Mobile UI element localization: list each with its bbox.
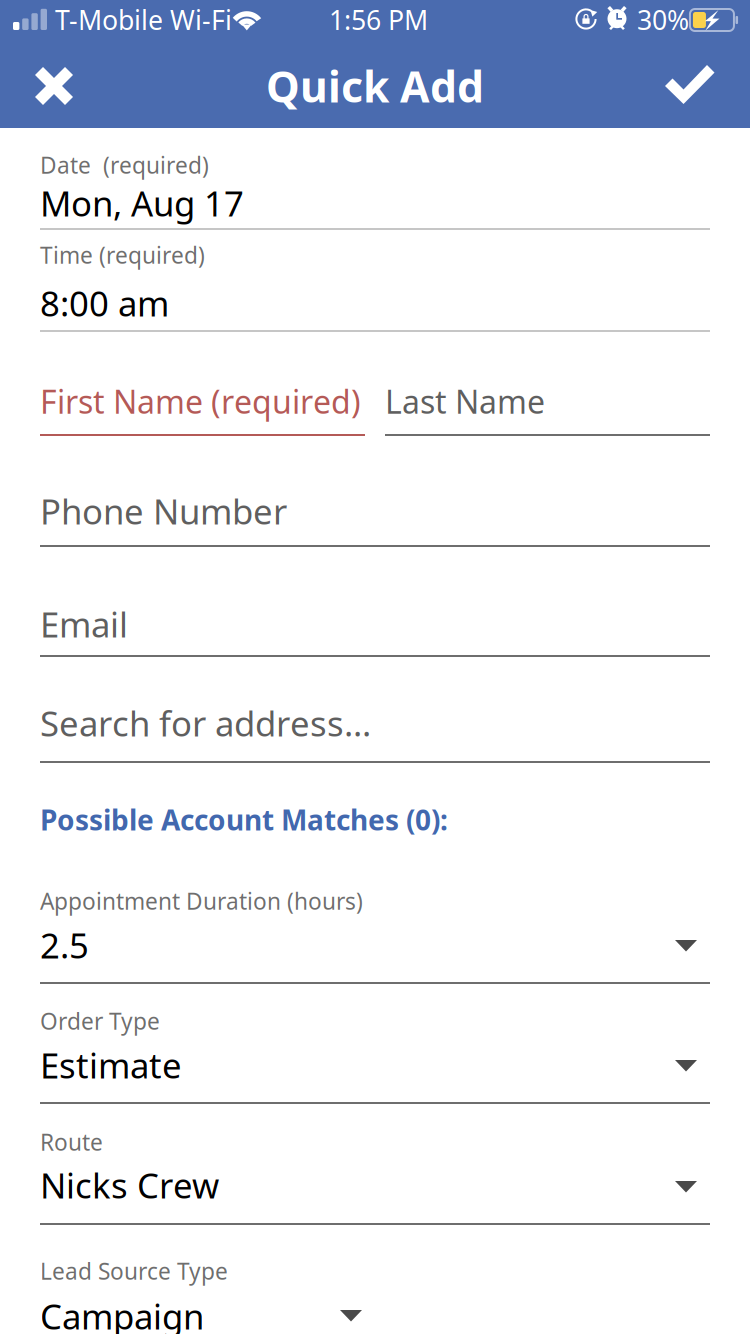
staticText: 8:00 am bbox=[40, 280, 169, 326]
button[interactable]: Close bbox=[6, 50, 102, 122]
staticText: Last Name bbox=[385, 380, 545, 422]
staticText: Date (required) bbox=[40, 150, 209, 180]
button[interactable]: Route bbox=[40, 1127, 710, 1223]
staticText: Mon, Aug 17 bbox=[40, 180, 244, 226]
staticText: 30% bbox=[637, 2, 689, 37]
button[interactable]: Time (required) bbox=[40, 242, 710, 330]
button[interactable]: Date (required) bbox=[40, 150, 710, 238]
button[interactable]: Save bbox=[640, 50, 736, 122]
staticText: 1:56 PM bbox=[329, 2, 428, 37]
button[interactable]: Search for address... bbox=[40, 701, 710, 771]
staticText: First Name (required) bbox=[40, 380, 361, 422]
staticText: Nicks Crew bbox=[40, 1162, 219, 1208]
button[interactable]: Appointment Duration (hours) bbox=[40, 886, 710, 982]
staticText: Search for address... bbox=[40, 700, 371, 746]
staticText: Time (required) bbox=[40, 240, 205, 270]
button[interactable]: Email bbox=[40, 602, 710, 672]
button[interactable]: Phone Number bbox=[40, 489, 710, 559]
staticText: Order Type bbox=[40, 1006, 160, 1036]
staticText: Lead Source Type bbox=[40, 1256, 228, 1286]
staticText: T-Mobile Wi-Fi bbox=[55, 2, 232, 37]
staticText: Estimate bbox=[40, 1042, 182, 1088]
staticText: Campaign bbox=[40, 1293, 204, 1334]
staticText: Route bbox=[40, 1127, 103, 1157]
button[interactable]: Lead Source Type bbox=[40, 1256, 710, 1334]
button[interactable]: Last Name bbox=[385, 378, 710, 438]
staticText: Email bbox=[40, 601, 128, 647]
staticText: Possible Account Matches (0): bbox=[40, 801, 448, 838]
staticText: Appointment Duration (hours) bbox=[40, 886, 363, 916]
staticText: 2.5 bbox=[40, 922, 89, 968]
button[interactable]: Order Type bbox=[40, 1006, 710, 1102]
button[interactable]: First Name (required) bbox=[40, 378, 365, 438]
staticText: Quick Add bbox=[266, 58, 484, 114]
staticText: Phone Number bbox=[40, 488, 287, 534]
